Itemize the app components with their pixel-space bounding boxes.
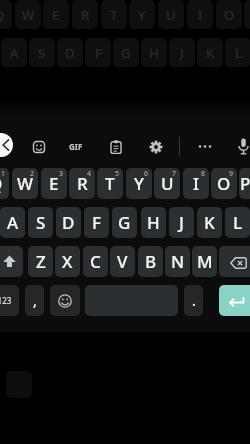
staticText: A [7, 211, 19, 234]
staticText: T [110, 6, 118, 24]
button[interactable]: A [0, 207, 25, 238]
button[interactable]: . [184, 285, 203, 316]
button[interactable] [219, 285, 250, 316]
staticText: L [233, 211, 243, 234]
staticText: P [240, 172, 250, 195]
staticText: I [198, 6, 203, 24]
button[interactable] [197, 140, 213, 153]
staticText: Z [36, 250, 46, 273]
staticText: V [117, 250, 128, 273]
staticText: R [77, 172, 88, 195]
staticText: W [17, 172, 33, 195]
button[interactable]: E [41, 168, 67, 199]
button[interactable]: ?123 [0, 285, 19, 316]
staticText: K [204, 211, 215, 234]
button[interactable]: Y [126, 168, 152, 199]
button[interactable]: C [83, 246, 108, 277]
staticText: S [38, 44, 46, 62]
button[interactable]: L [225, 207, 250, 238]
staticText: D [65, 44, 75, 62]
staticText: O [217, 172, 231, 195]
staticText: N [171, 250, 185, 273]
staticText: GIF [69, 141, 83, 152]
staticText: E [49, 172, 59, 195]
button[interactable]: V [110, 246, 135, 277]
staticText: Y [138, 6, 146, 24]
button[interactable]: N [165, 246, 190, 277]
staticText: I [193, 172, 200, 195]
button[interactable]: S [28, 207, 53, 238]
staticText: M [197, 250, 213, 273]
button[interactable]: Z [28, 246, 53, 277]
staticText: 4 [87, 169, 92, 179]
button[interactable]: F [84, 207, 109, 238]
button[interactable]: B [138, 246, 163, 277]
staticText: C [90, 250, 101, 273]
button[interactable]: X [55, 246, 80, 277]
staticText: Y [134, 172, 144, 195]
staticText: 8 [201, 169, 206, 179]
staticText: S [36, 211, 46, 234]
button[interactable]: R [69, 168, 95, 199]
staticText: B [145, 250, 157, 273]
staticText: G [118, 211, 131, 234]
staticText: K [206, 44, 215, 62]
staticText: W [22, 6, 35, 24]
staticText: R [81, 6, 90, 24]
staticText: A [10, 44, 19, 62]
button[interactable]: I [183, 168, 209, 199]
button[interactable] [33, 141, 45, 153]
staticText: 1 [1, 169, 6, 179]
staticText: D [62, 211, 75, 234]
staticText: U [166, 6, 176, 24]
button[interactable]: K [197, 207, 222, 238]
button[interactable]: G [112, 207, 137, 238]
staticText: Q [0, 6, 5, 24]
button[interactable]: O [211, 168, 237, 199]
button[interactable] [237, 138, 250, 156]
button[interactable] [219, 246, 250, 277]
staticText: J [179, 211, 184, 234]
button[interactable]: U [154, 168, 180, 199]
staticText: J [180, 44, 184, 62]
button[interactable] [50, 285, 80, 316]
button[interactable] [110, 140, 122, 154]
button[interactable]: T [97, 168, 123, 199]
staticText: O [224, 6, 235, 24]
staticText: F [95, 44, 102, 62]
button[interactable]: J [169, 207, 194, 238]
staticText: 2 [30, 169, 35, 179]
staticText: . [192, 291, 196, 310]
staticText: 6 [144, 169, 149, 179]
button[interactable]: W [12, 168, 38, 199]
button[interactable]: D [56, 207, 81, 238]
staticText: 5 [115, 169, 120, 179]
button[interactable]: Q [0, 168, 9, 199]
button[interactable]: H [141, 207, 166, 238]
button[interactable]: GIF [66, 140, 86, 153]
staticText: G [121, 44, 131, 62]
staticText: Q [0, 172, 3, 195]
staticText: 7 [172, 169, 177, 179]
staticText: 9 [229, 169, 234, 179]
button[interactable]: M [192, 246, 217, 277]
staticText: L [235, 44, 242, 62]
staticText: 3 [59, 169, 64, 179]
button[interactable] [0, 246, 23, 277]
button[interactable]: P [239, 168, 250, 199]
staticText: U [161, 172, 174, 195]
staticText: ?123 [0, 295, 12, 306]
staticText: H [147, 211, 160, 234]
staticText: T [105, 172, 115, 195]
staticText: E [52, 6, 60, 24]
button[interactable] [149, 140, 163, 154]
staticText: F [92, 211, 101, 234]
button[interactable] [0, 133, 13, 157]
staticText: , [33, 291, 37, 310]
staticText: X [62, 250, 73, 273]
button[interactable]: , [25, 285, 44, 316]
staticText: H [149, 44, 159, 62]
